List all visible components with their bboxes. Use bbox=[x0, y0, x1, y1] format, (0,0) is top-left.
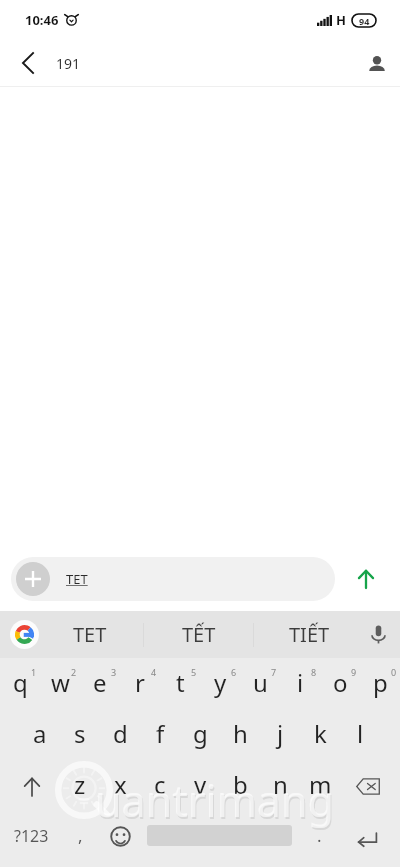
staticText: m bbox=[309, 768, 332, 801]
button[interactable]: z bbox=[60, 763, 100, 814]
button[interactable]: Emoji bbox=[98, 814, 140, 865]
button[interactable]: y bbox=[200, 661, 240, 712]
button[interactable]: s bbox=[60, 712, 100, 763]
staticText: f bbox=[156, 717, 165, 750]
staticText: d bbox=[113, 717, 128, 750]
button[interactable]: i bbox=[280, 661, 320, 712]
staticText: k bbox=[314, 717, 327, 750]
staticText: 1 bbox=[31, 666, 37, 678]
staticText: uantrimang bbox=[96, 773, 335, 832]
staticText: i bbox=[297, 666, 304, 699]
button[interactable]: TIẾT bbox=[254, 611, 364, 658]
staticText: y bbox=[214, 666, 227, 699]
staticText: 8 bbox=[311, 666, 317, 678]
staticText: uantrimang bbox=[95, 771, 334, 830]
staticText: TIẾT bbox=[289, 621, 330, 648]
staticText: j bbox=[277, 717, 284, 750]
button[interactable]: Voice input bbox=[356, 611, 400, 658]
staticText: 2 bbox=[71, 666, 77, 678]
button[interactable]: e bbox=[80, 661, 120, 712]
button[interactable]: Back bbox=[0, 40, 56, 86]
staticText: x bbox=[114, 768, 127, 801]
staticText: g bbox=[193, 717, 208, 750]
staticText: 5 bbox=[191, 666, 197, 678]
staticText: v bbox=[194, 768, 207, 801]
button[interactable]: n bbox=[260, 763, 300, 814]
button[interactable]: b bbox=[220, 763, 260, 814]
staticText: w bbox=[51, 666, 70, 699]
staticText: z bbox=[74, 768, 86, 801]
button[interactable]: o bbox=[320, 661, 360, 712]
staticText: q bbox=[13, 666, 28, 699]
button[interactable]: q bbox=[0, 661, 40, 712]
button[interactable]: Send bbox=[344, 557, 388, 601]
button[interactable]: Contact info bbox=[352, 40, 400, 86]
staticText: p bbox=[373, 666, 388, 699]
button[interactable]: f bbox=[140, 712, 180, 763]
button[interactable]: Backspace bbox=[340, 763, 400, 814]
button[interactable]: ?123 bbox=[0, 814, 63, 865]
button[interactable]: v bbox=[180, 763, 220, 814]
staticText: TET bbox=[66, 570, 88, 588]
staticText: H bbox=[336, 11, 346, 29]
staticText: 9 bbox=[351, 666, 357, 678]
staticText: s bbox=[74, 717, 86, 750]
button[interactable]: u bbox=[240, 661, 280, 712]
staticText: 0 bbox=[391, 666, 397, 678]
button[interactable]: Shift bbox=[0, 763, 60, 814]
staticText: u bbox=[253, 666, 268, 699]
button[interactable]: c bbox=[140, 763, 180, 814]
button[interactable]: , bbox=[63, 814, 98, 865]
staticText: a bbox=[33, 717, 47, 750]
staticText: e bbox=[93, 666, 107, 699]
staticText: c bbox=[154, 768, 166, 801]
button[interactable]: TET bbox=[35, 611, 144, 658]
staticText: 7 bbox=[271, 666, 277, 678]
button[interactable]: m bbox=[300, 763, 340, 814]
button[interactable]: Enter bbox=[345, 814, 400, 865]
button[interactable]: k bbox=[300, 712, 340, 763]
staticText: h bbox=[233, 717, 248, 750]
staticText: r bbox=[135, 666, 145, 699]
button[interactable]: r bbox=[120, 661, 160, 712]
staticText: l bbox=[357, 717, 364, 750]
staticText: . bbox=[317, 824, 322, 847]
staticText: t bbox=[176, 666, 185, 699]
staticText: 94 bbox=[359, 15, 370, 27]
staticText: 10:46 bbox=[25, 11, 59, 29]
staticText: ?123 bbox=[14, 825, 49, 847]
button[interactable]: j bbox=[260, 712, 300, 763]
button[interactable]: Add attachment bbox=[11, 557, 335, 601]
staticText: n bbox=[273, 768, 288, 801]
button[interactable]: TẾT bbox=[144, 611, 254, 658]
button[interactable]: a bbox=[20, 712, 60, 763]
button[interactable]: g bbox=[180, 712, 220, 763]
staticText: 191 bbox=[56, 54, 81, 73]
staticText: 4 bbox=[151, 666, 157, 678]
button[interactable]: . bbox=[293, 814, 345, 865]
button[interactable]: x bbox=[100, 763, 140, 814]
staticText: 3 bbox=[111, 666, 117, 678]
button[interactable]: Google search bbox=[10, 620, 39, 649]
staticText: o bbox=[333, 666, 348, 699]
button[interactable]: d bbox=[100, 712, 140, 763]
staticText: b bbox=[233, 768, 248, 801]
button[interactable]: l bbox=[340, 712, 380, 763]
button[interactable]: w bbox=[40, 661, 80, 712]
staticText: 6 bbox=[231, 666, 237, 678]
button[interactable]: t bbox=[160, 661, 200, 712]
staticText: TẾT bbox=[182, 621, 216, 648]
button[interactable]: p bbox=[360, 661, 400, 712]
button[interactable]: Add attachment bbox=[16, 562, 50, 596]
staticText: , bbox=[78, 824, 83, 847]
button[interactable]: h bbox=[220, 712, 260, 763]
staticText: TET bbox=[73, 621, 107, 648]
